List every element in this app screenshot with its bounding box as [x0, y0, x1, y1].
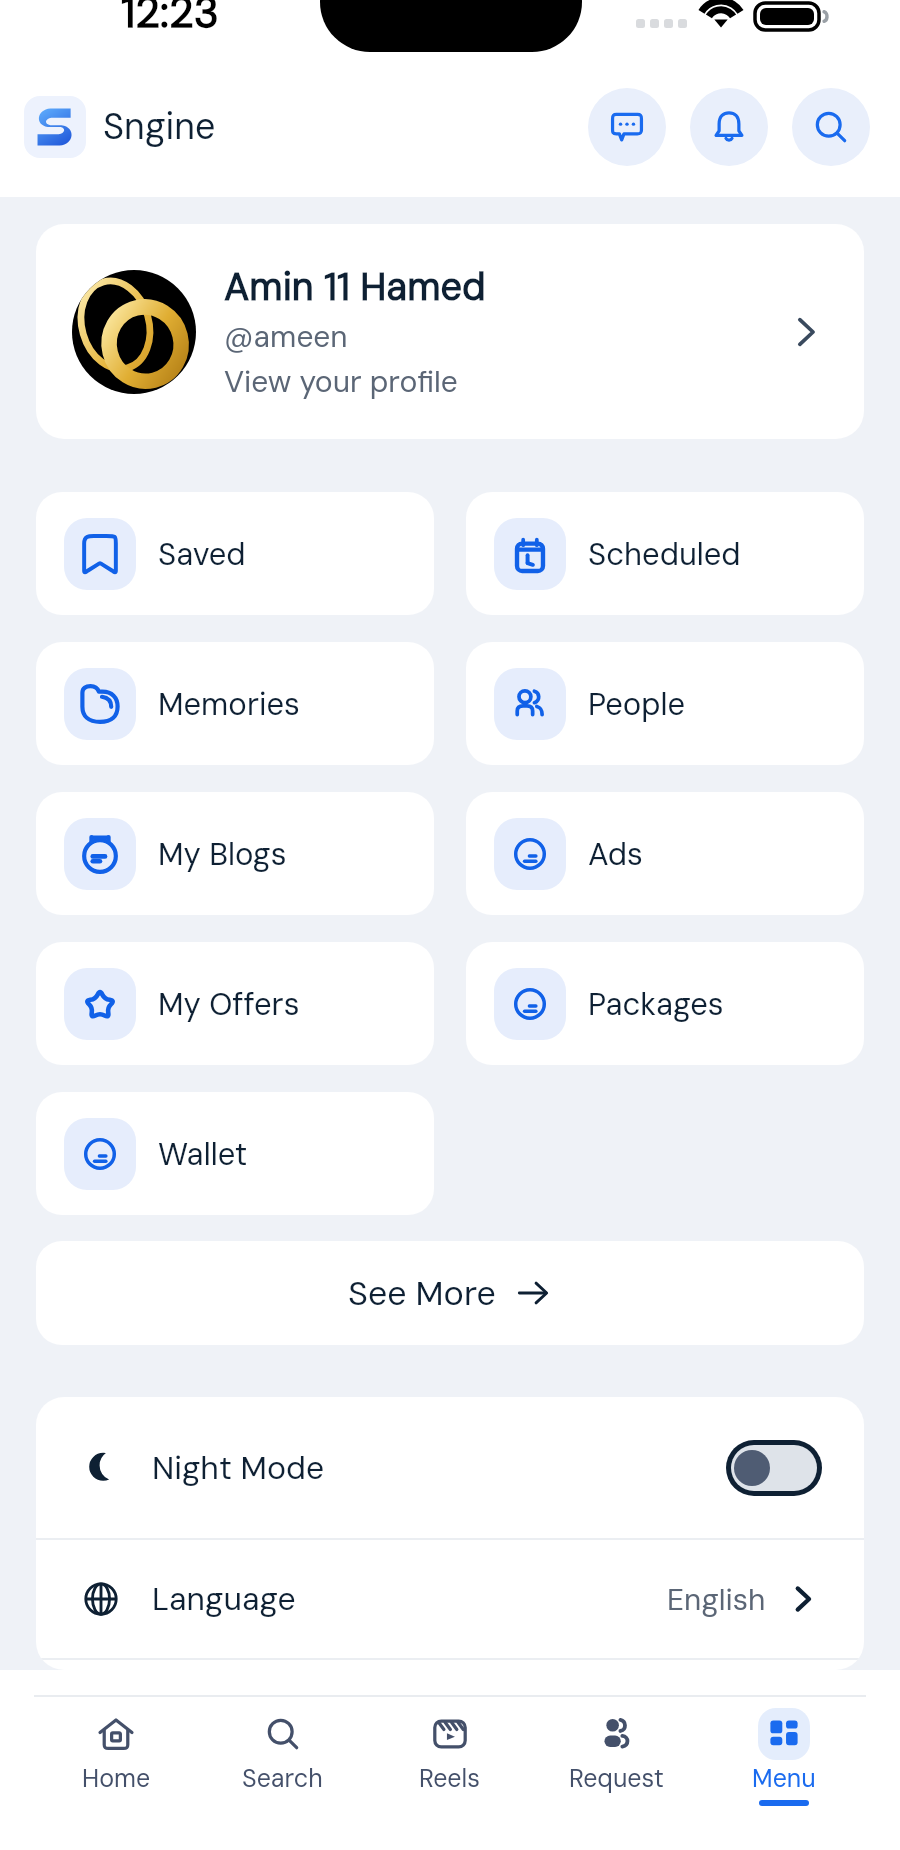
button[interactable]: Saved [36, 492, 434, 615]
button[interactable]: Amin 11 Hamed [36, 224, 864, 439]
staticText: People [588, 684, 686, 724]
staticText: Request [569, 1762, 664, 1795]
button[interactable]: See More [36, 1241, 864, 1345]
staticText: Home [82, 1762, 151, 1795]
staticText: Ads [588, 834, 643, 874]
button[interactable]: Messages [588, 88, 666, 166]
button[interactable]: Language [36, 1540, 864, 1658]
staticText: Sngine [103, 103, 216, 150]
staticText: Menu [752, 1762, 816, 1795]
button[interactable]: Menu [700, 1708, 867, 1806]
button[interactable]: Home [33, 1708, 199, 1795]
button[interactable]: Packages [466, 942, 864, 1065]
staticText: @ameen [224, 317, 348, 356]
staticText: Scheduled [588, 534, 741, 574]
button[interactable]: People [466, 642, 864, 765]
staticText: Language [152, 1578, 296, 1620]
staticText: See More [348, 1271, 496, 1315]
button[interactable]: Search [792, 88, 870, 166]
button[interactable]: Notifications [690, 88, 768, 166]
button[interactable]: Request [533, 1708, 700, 1795]
staticText: My Offers [158, 984, 300, 1024]
button[interactable]: My Blogs [36, 792, 434, 915]
staticText: 12:23 [121, 0, 219, 40]
button[interactable]: Memories [36, 642, 434, 765]
button[interactable]: Search [199, 1708, 366, 1795]
button[interactable]: My Offers [36, 942, 434, 1065]
staticText: Search [242, 1762, 323, 1795]
staticText: Memories [158, 684, 300, 724]
button[interactable]: Wallet [36, 1092, 434, 1215]
staticText: Reels [419, 1762, 480, 1795]
staticText: Wallet [158, 1134, 248, 1174]
staticText: Amin 11 Hamed [224, 262, 486, 311]
staticText: View your profile [224, 362, 458, 401]
staticText: English [667, 1580, 766, 1619]
button[interactable]: Ads [466, 792, 864, 915]
staticText: My Blogs [158, 834, 287, 874]
staticText: Packages [588, 984, 724, 1024]
staticText: Saved [158, 534, 246, 574]
button[interactable]: Night Mode [36, 1397, 864, 1538]
button[interactable]: Scheduled [466, 492, 864, 615]
button[interactable]: Reels [366, 1708, 533, 1795]
staticText: Night Mode [152, 1447, 325, 1489]
